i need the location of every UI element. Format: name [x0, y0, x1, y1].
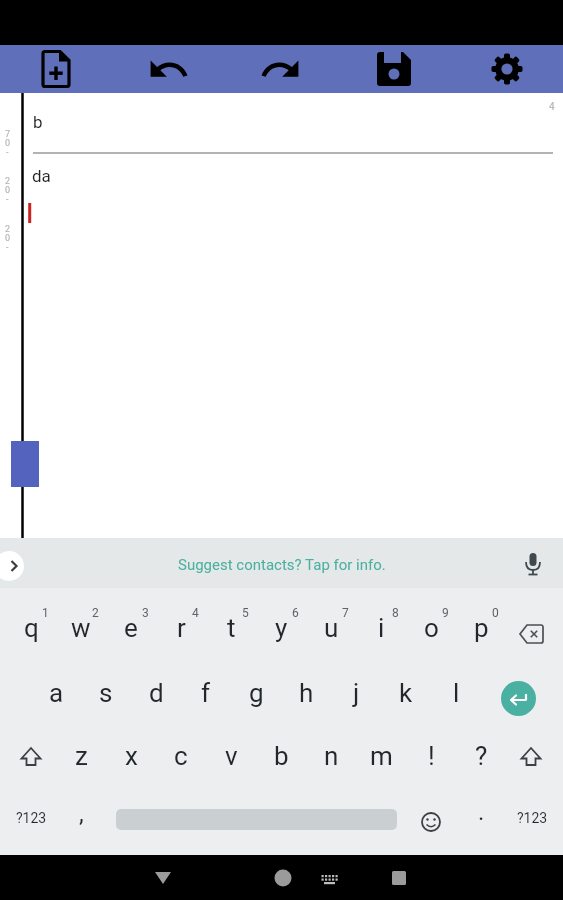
button[interactable]: ?	[457, 727, 505, 785]
staticText: 3	[142, 606, 149, 620]
button[interactable]	[407, 792, 455, 846]
staticText: 1	[42, 606, 49, 620]
staticText: 2	[5, 224, 11, 235]
button[interactable]	[518, 550, 548, 580]
button[interactable]	[224, 45, 337, 93]
staticText: da	[32, 166, 51, 186]
staticText: b	[33, 112, 43, 132]
staticText: -	[6, 147, 9, 158]
button[interactable]	[263, 857, 303, 897]
button[interactable]: q	[7, 599, 55, 657]
staticText: 9	[442, 606, 449, 620]
staticText: f	[201, 678, 211, 708]
staticText: r	[177, 613, 186, 643]
staticText: h	[299, 678, 314, 708]
staticText: -	[6, 242, 9, 253]
button[interactable]	[0, 45, 112, 93]
button[interactable]: Suggest contacts? Tap for info.	[0, 540, 563, 590]
staticText: .	[478, 798, 485, 826]
staticText: 0	[5, 138, 11, 149]
button[interactable]: f	[182, 664, 230, 722]
button[interactable]: a	[32, 664, 80, 722]
button[interactable]: ?123	[506, 791, 558, 845]
button[interactable]: p	[457, 599, 505, 657]
staticText: 4	[549, 101, 555, 113]
button[interactable]	[7, 733, 55, 781]
button[interactable]: ,	[59, 787, 103, 841]
staticText: 4	[192, 606, 199, 620]
button[interactable]: d	[132, 664, 180, 722]
staticText: g	[249, 678, 264, 708]
button[interactable]: n	[307, 727, 355, 785]
staticText: c	[174, 741, 188, 771]
button[interactable]: .	[459, 785, 503, 839]
button[interactable]: m	[357, 727, 405, 785]
staticText: 6	[292, 606, 299, 620]
staticText: 0	[492, 606, 499, 620]
button[interactable]: r	[157, 599, 205, 657]
staticText: 7	[342, 606, 349, 620]
staticText: 0	[5, 185, 11, 196]
button[interactable]: i	[357, 599, 405, 657]
staticText: 2	[92, 606, 99, 620]
button[interactable]: c	[157, 727, 205, 785]
staticText: 2	[5, 176, 11, 187]
staticText: ?123	[16, 810, 47, 826]
button[interactable]: o	[407, 599, 455, 657]
staticText: q	[24, 613, 39, 643]
staticText: !	[428, 741, 435, 771]
button[interactable]: j	[332, 664, 380, 722]
staticText: w	[71, 613, 91, 643]
button[interactable]: l	[432, 664, 480, 722]
staticText: 8	[392, 606, 399, 620]
staticText: ,	[79, 800, 84, 828]
button[interactable]: k	[382, 664, 430, 722]
staticText: ?123	[517, 810, 548, 826]
button[interactable]	[311, 857, 347, 897]
staticText: p	[474, 613, 489, 643]
button[interactable]: t	[207, 599, 255, 657]
staticText: e	[124, 613, 138, 643]
staticText: t	[227, 613, 236, 643]
staticText: s	[99, 678, 113, 708]
staticText: d	[149, 678, 164, 708]
staticText: u	[324, 613, 339, 643]
button[interactable]: b	[257, 727, 305, 785]
button[interactable]	[0, 551, 24, 581]
staticText: Suggest contacts? Tap for info.	[178, 556, 386, 574]
button[interactable]: g	[232, 664, 280, 722]
button[interactable]: x	[107, 727, 155, 785]
staticText: i	[378, 613, 385, 643]
button[interactable]	[379, 857, 419, 897]
button[interactable]	[337, 45, 450, 93]
button[interactable]	[143, 857, 183, 897]
staticText: z	[75, 741, 88, 771]
button[interactable]	[507, 733, 555, 781]
button[interactable]: u	[307, 599, 355, 657]
button[interactable]	[450, 45, 563, 93]
staticText: 5	[242, 606, 249, 620]
staticText: ?	[475, 741, 488, 771]
staticText: x	[125, 741, 138, 771]
button[interactable]: e	[107, 599, 155, 657]
staticText: -	[6, 194, 9, 205]
staticText: m	[370, 741, 393, 771]
button[interactable]: h	[282, 664, 330, 722]
button[interactable]: z	[57, 727, 105, 785]
staticText: a	[49, 678, 64, 708]
button[interactable]	[501, 681, 536, 716]
staticText: b	[274, 741, 289, 771]
button[interactable]	[112, 45, 224, 93]
staticText: o	[424, 613, 439, 643]
staticText: j	[353, 678, 360, 708]
button[interactable]: w	[57, 599, 105, 657]
button[interactable]: v	[207, 727, 255, 785]
button[interactable]: y	[257, 599, 305, 657]
staticText: v	[225, 741, 238, 771]
button[interactable]: !	[407, 727, 455, 785]
staticText: n	[324, 741, 339, 771]
button[interactable]: s	[82, 664, 130, 722]
button[interactable]: ?123	[5, 791, 57, 845]
button[interactable]	[508, 604, 556, 658]
